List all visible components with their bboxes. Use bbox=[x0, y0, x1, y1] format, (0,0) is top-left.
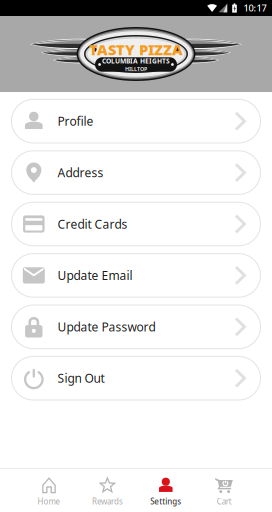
button[interactable]: Address bbox=[11, 151, 260, 194]
staticText: HILLTOP bbox=[125, 65, 147, 72]
staticText: TASTY PIZZA bbox=[89, 40, 183, 59]
staticText: 10:17 bbox=[243, 2, 266, 14]
button[interactable]: Sign Out bbox=[11, 356, 260, 400]
staticText: Profile bbox=[57, 113, 93, 129]
button[interactable]: Settings bbox=[137, 469, 195, 512]
button[interactable]: Update Password bbox=[11, 305, 260, 349]
staticText: COLUMBIA HEIGHTS bbox=[102, 56, 170, 65]
staticText: Credit Cards bbox=[57, 216, 127, 232]
staticText: Settings bbox=[150, 496, 181, 507]
button[interactable]: Update Email bbox=[11, 254, 260, 297]
staticText: Update Password bbox=[57, 319, 155, 335]
staticText: Sign Out bbox=[57, 370, 104, 386]
button[interactable]: Credit Cards bbox=[11, 202, 260, 246]
staticText: Rewards bbox=[92, 496, 123, 507]
staticText: Update Email bbox=[57, 267, 132, 283]
staticText: Home bbox=[37, 496, 60, 507]
button[interactable]: Profile bbox=[11, 99, 260, 143]
staticText: Address bbox=[57, 165, 103, 180]
button[interactable]: Rewards bbox=[78, 469, 137, 512]
button[interactable]: Cart bbox=[195, 469, 253, 512]
button[interactable]: Home bbox=[20, 469, 78, 512]
staticText: Cart bbox=[217, 496, 232, 507]
